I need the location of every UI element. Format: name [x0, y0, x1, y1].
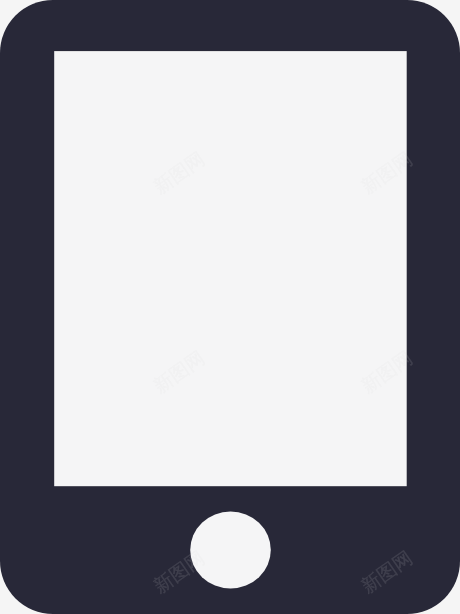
button[interactable]: Tablet device	[0, 0, 460, 614]
